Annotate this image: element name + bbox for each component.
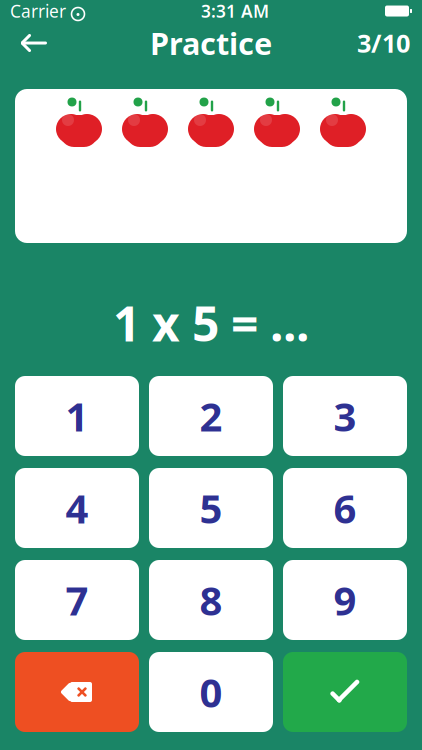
- button[interactable]: 4: [15, 468, 139, 548]
- button[interactable]: Delete: [15, 652, 139, 732]
- staticText: 3:31 AM: [201, 0, 269, 22]
- button[interactable]: 3/10: [357, 23, 410, 63]
- staticText: Carrier: [10, 0, 66, 22]
- button[interactable]: 7: [15, 560, 139, 640]
- button[interactable]: Confirm: [283, 652, 407, 732]
- staticText: 5: [199, 481, 222, 534]
- staticText: 6: [333, 481, 356, 534]
- staticText: 3/10: [357, 26, 410, 60]
- staticText: Practice: [150, 23, 272, 63]
- staticText: 4: [65, 481, 88, 534]
- staticText: 9: [333, 573, 356, 626]
- staticText: 8: [199, 573, 222, 626]
- button[interactable]: 2: [149, 376, 273, 456]
- button[interactable]: 5: [149, 468, 273, 548]
- button[interactable]: 0: [149, 652, 273, 732]
- staticText: 0: [199, 665, 222, 718]
- button[interactable]: 6: [283, 468, 407, 548]
- button[interactable]: 1: [15, 376, 139, 456]
- staticText: 2: [199, 389, 222, 442]
- staticText: 3: [333, 389, 356, 442]
- staticText: 7: [65, 573, 88, 626]
- staticText: 1: [65, 389, 88, 442]
- staticText: 1 x 5 = ...: [113, 291, 309, 355]
- button[interactable]: 8: [149, 560, 273, 640]
- button[interactable]: 9: [283, 560, 407, 640]
- button[interactable]: 3: [283, 376, 407, 456]
- button[interactable]: Back: [12, 23, 56, 63]
